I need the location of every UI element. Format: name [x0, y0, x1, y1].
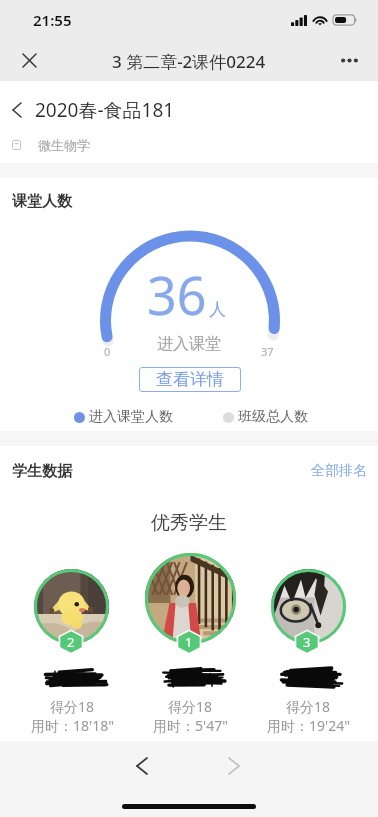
button[interactable] — [34, 569, 109, 644]
button[interactable] — [145, 553, 236, 644]
staticText: 用时：5'47" — [153, 716, 228, 735]
staticText: 得分18 — [168, 697, 213, 716]
staticText: 37 — [261, 344, 274, 359]
staticText: 用时：18'18" — [31, 716, 114, 735]
staticText: 进入课堂 — [157, 334, 221, 354]
button[interactable]: 全部排名 — [311, 462, 367, 480]
staticText: 得分18 — [286, 697, 331, 716]
staticText: 2020春-食品181 — [35, 97, 175, 123]
staticText: 学生数据 — [12, 462, 72, 481]
staticText: 1 — [185, 633, 193, 651]
button[interactable]: More options — [329, 40, 369, 80]
button[interactable]: Next — [214, 746, 254, 786]
staticText: 3 第二章-2课件0224 — [112, 50, 266, 73]
staticText: 得分18 — [50, 697, 95, 716]
button[interactable] — [271, 569, 346, 644]
staticText: 查看详情 — [156, 369, 224, 390]
staticText: 全部排名 — [311, 462, 367, 480]
staticText: 微生物学 — [38, 137, 90, 153]
staticText: 36 — [147, 259, 207, 330]
staticText: 优秀学生 — [151, 511, 227, 535]
staticText: 2 — [67, 633, 75, 651]
staticText: 21:55 — [33, 10, 72, 30]
staticText: 0 — [104, 344, 111, 359]
staticText: 3 — [303, 633, 311, 651]
staticText: 班级总人数 — [238, 408, 308, 426]
staticText: 人 — [209, 299, 226, 320]
button[interactable]: Previous — [122, 746, 162, 786]
button[interactable]: 查看详情 — [139, 367, 241, 392]
button[interactable]: Close — [9, 40, 49, 80]
staticText: 用时：19'24" — [267, 716, 350, 735]
staticText: 课堂人数 — [12, 192, 72, 211]
staticText: 进入课堂人数 — [89, 408, 173, 426]
